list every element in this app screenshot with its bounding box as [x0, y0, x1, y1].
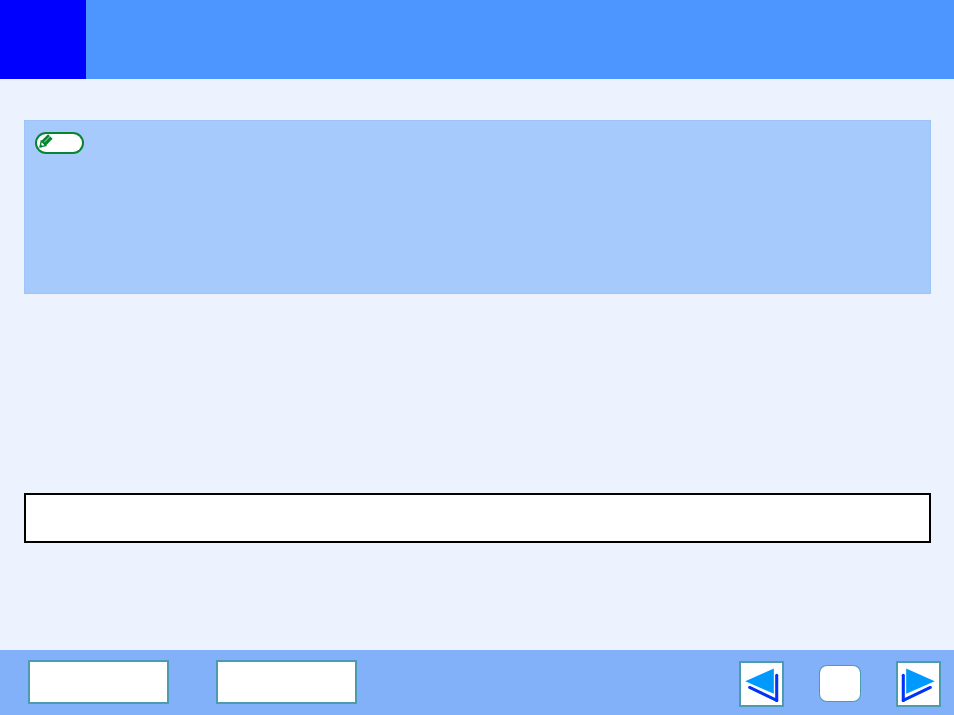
button[interactable]: Previous [741, 663, 782, 705]
button[interactable]: Edit [37, 134, 82, 152]
button[interactable]: Next [898, 663, 939, 705]
button[interactable]: Stop [820, 666, 860, 701]
button[interactable]: Edit [25, 121, 930, 293]
